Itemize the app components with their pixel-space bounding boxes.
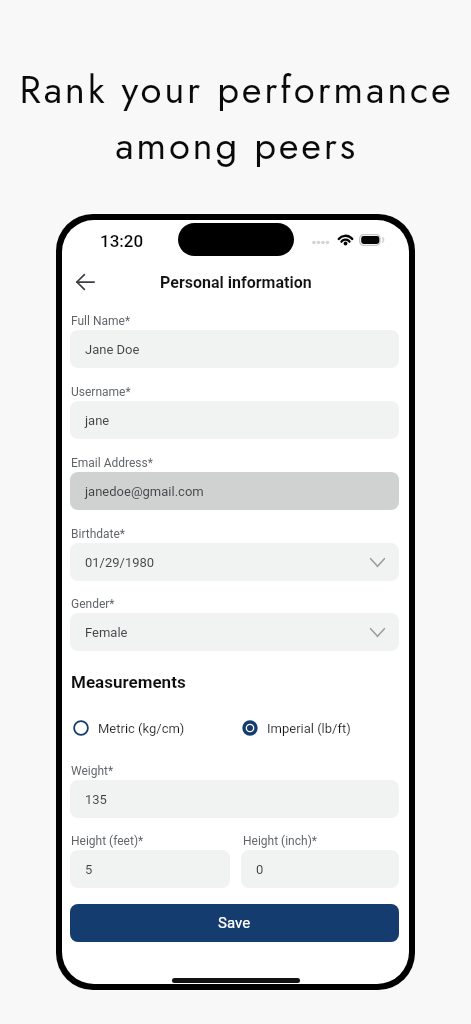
staticText: Username*: [71, 385, 131, 399]
button[interactable]: 5: [70, 850, 230, 888]
button[interactable]: 01/29/1980: [70, 543, 399, 581]
button[interactable]: Back: [71, 268, 99, 296]
staticText: 01/29/1980: [85, 555, 155, 570]
staticText: 5: [85, 862, 93, 877]
staticText: Full Name*: [71, 314, 131, 328]
staticText: Height (inch)*: [243, 834, 317, 848]
staticText: Birthdate*: [71, 527, 126, 541]
button[interactable]: Metric (kg/cm): [73, 720, 242, 736]
staticText: Email Address*: [71, 456, 153, 470]
staticText: Rank your performance: [19, 62, 454, 117]
button[interactable]: Save: [70, 904, 399, 942]
staticText: 0: [256, 862, 264, 877]
button[interactable]: Jane Doe: [70, 330, 399, 368]
staticText: Personal information: [160, 273, 312, 292]
staticText: jane: [85, 413, 110, 428]
staticText: Weight*: [71, 764, 114, 778]
staticText: 135: [85, 792, 107, 807]
staticText: Measurements: [71, 672, 186, 692]
button[interactable]: janedoe@gmail.com: [70, 472, 399, 510]
staticText: among peers: [115, 118, 358, 173]
staticText: 13:20: [100, 231, 144, 251]
button[interactable]: jane: [70, 401, 399, 439]
button[interactable]: Imperial (lb/ft): [242, 720, 351, 736]
staticText: Save: [218, 914, 251, 932]
staticText: Female: [85, 625, 128, 640]
staticText: Jane Doe: [85, 342, 140, 357]
button[interactable]: 0: [241, 850, 399, 888]
button[interactable]: Female: [70, 613, 399, 651]
staticText: Metric (kg/cm): [98, 721, 185, 736]
staticText: Imperial (lb/ft): [267, 721, 351, 736]
staticText: janedoe@gmail.com: [85, 484, 204, 499]
staticText: Gender*: [71, 597, 115, 611]
staticText: Height (feet)*: [71, 834, 144, 848]
button[interactable]: 135: [70, 780, 399, 818]
